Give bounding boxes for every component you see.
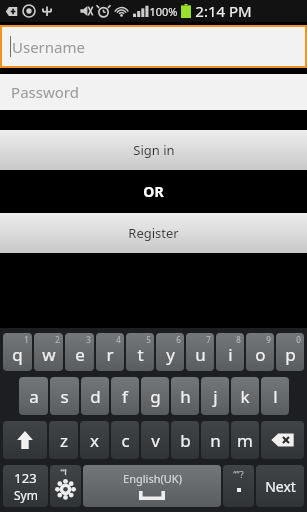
staticText: s (60, 385, 69, 408)
button[interactable]: Settings (50, 465, 81, 507)
button[interactable]: 2 (34, 333, 63, 371)
staticText: b (180, 429, 191, 452)
button[interactable]: 5 (126, 333, 154, 371)
button[interactable]: s (50, 377, 79, 415)
button[interactable]: z (49, 421, 78, 459)
staticText: x (90, 429, 99, 452)
button[interactable]: k (231, 377, 259, 415)
button[interactable]: Password (0, 74, 307, 110)
staticText: w (42, 343, 56, 366)
staticText: 5 (146, 334, 151, 345)
button[interactable]: 1 (3, 333, 32, 371)
staticText: 7 (206, 334, 211, 345)
button[interactable]: 0 (276, 333, 304, 371)
staticText: o (255, 343, 266, 366)
button[interactable]: g (141, 377, 169, 415)
staticText: g (150, 385, 161, 408)
staticText: Register (128, 224, 179, 242)
button[interactable]: Register (0, 213, 307, 253)
staticText: 3 (86, 334, 91, 345)
button[interactable]: c (111, 421, 139, 459)
button[interactable]: “”? (223, 465, 254, 507)
button[interactable]: a (19, 377, 48, 415)
button[interactable]: l (261, 377, 289, 415)
staticText: 9 (266, 334, 271, 345)
button[interactable]: Backspace (261, 421, 304, 459)
staticText: i (228, 343, 233, 366)
button[interactable]: 4 (96, 333, 124, 371)
staticText: 2:14 PM (195, 1, 252, 21)
button[interactable]: d (81, 377, 109, 415)
button[interactable]: m (231, 421, 259, 459)
staticText: Sign in (133, 141, 175, 159)
button[interactable]: 9 (246, 333, 274, 371)
staticText: 123 (14, 469, 37, 487)
staticText: t (137, 343, 144, 366)
staticText: d (90, 385, 101, 408)
staticText: k (240, 385, 250, 408)
staticText: 4 (116, 334, 121, 345)
staticText: u (195, 343, 206, 366)
staticText: p (285, 343, 296, 366)
staticText: English(UK) (123, 471, 182, 486)
staticText: a (29, 385, 39, 408)
staticText: 100% (149, 4, 178, 19)
button[interactable]: j (201, 377, 229, 415)
staticText: q (12, 343, 23, 366)
staticText: Username (12, 37, 85, 57)
staticText: 0 (296, 334, 301, 345)
button[interactable]: English(UK) (83, 465, 221, 507)
button[interactable]: 7 (186, 333, 214, 371)
staticText: h (180, 385, 191, 408)
button[interactable]: Shift (3, 421, 47, 459)
button[interactable]: v (141, 421, 169, 459)
staticText: c (121, 429, 130, 452)
button[interactable]: Sign in (0, 130, 307, 170)
staticText: 1 (24, 334, 29, 345)
staticText: y (166, 343, 175, 366)
staticText: z (60, 429, 68, 452)
button[interactable]: 3 (65, 333, 94, 371)
staticText: 8 (236, 334, 241, 345)
button[interactable]: 6 (156, 333, 184, 371)
staticText: Sym (14, 487, 38, 503)
button[interactable]: 8 (216, 333, 244, 371)
staticText: e (75, 343, 85, 366)
staticText: n (210, 429, 221, 452)
staticText: f (122, 385, 128, 408)
staticText: “”? (233, 468, 244, 480)
button[interactable]: b (171, 421, 199, 459)
staticText: j (213, 385, 218, 408)
staticText: v (151, 429, 160, 452)
button[interactable]: h (171, 377, 199, 415)
staticText: Password (11, 82, 79, 102)
staticText: l (273, 385, 278, 408)
staticText: r (106, 343, 114, 366)
staticText: Next (265, 477, 296, 496)
staticText: OR (143, 182, 164, 201)
button[interactable]: f (111, 377, 139, 415)
staticText: m (237, 429, 253, 452)
button[interactable]: 123 (3, 465, 48, 507)
button[interactable]: x (80, 421, 109, 459)
staticText: 2 (55, 334, 60, 345)
button[interactable]: Next (256, 465, 304, 507)
button[interactable]: n (201, 421, 229, 459)
staticText: 6 (176, 334, 181, 345)
button[interactable]: Username (2, 27, 305, 66)
